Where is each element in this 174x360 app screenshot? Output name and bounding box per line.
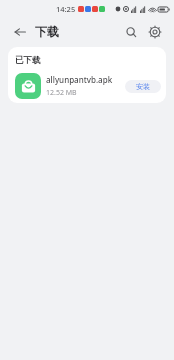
button[interactable]: Settings [146,23,164,41]
staticText: 已下载 [15,55,41,66]
staticText: 14:25 [56,4,76,14]
staticText: 安装 [136,82,150,91]
button[interactable]: Back [12,24,28,40]
button[interactable]: 安装 [125,80,161,93]
button[interactable]: allyunpantvb.apk [15,73,161,99]
button[interactable]: Search [122,23,140,41]
staticText: 12.52 MB [46,88,77,98]
staticText: allyunpantvb.apk [46,74,113,85]
staticText: 下载 [35,24,59,39]
